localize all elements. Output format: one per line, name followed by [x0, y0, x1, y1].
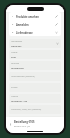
button[interactable]: Bestellung €105: [6, 117, 64, 130]
button[interactable]: Straße: [9, 83, 61, 92]
button[interactable]: Unternehmen (optional): [9, 72, 61, 81]
staticText: Anmelden: [16, 23, 29, 26]
staticText: Bestellt am 3. Juli: [14, 125, 31, 128]
staticText: Lieferadresse: [16, 31, 33, 34]
staticText: Adresse: [11, 95, 19, 98]
staticText: Anrede: [11, 51, 18, 54]
staticText: Bestellung €105: [14, 120, 35, 124]
staticText: Produkte ansehen: [16, 15, 39, 18]
staticText: 1: [12, 15, 14, 18]
button[interactable]: Wohnung, Suite, etc. (optional): [9, 105, 61, 114]
staticText: Vorname: [11, 62, 20, 65]
staticText: Germany: [11, 44, 22, 47]
other: Edit: [55, 23, 58, 26]
button[interactable]: Vorname: [9, 61, 61, 70]
button[interactable]: Adresse: [9, 94, 61, 103]
staticText: Frau: [11, 55, 17, 58]
staticText: Musterstr. 123: [11, 99, 28, 102]
staticText: 3: [12, 31, 14, 34]
button[interactable]: Land/Region: [9, 39, 61, 48]
button[interactable]: 2: [9, 20, 61, 28]
button[interactable]: 3: [9, 28, 61, 36]
button[interactable]: 1: [9, 12, 61, 20]
other: Expand: [55, 31, 58, 34]
staticText: 2: [12, 23, 14, 26]
other: Edit: [55, 15, 58, 18]
staticText: Wohnung, Suite, etc. (optional): [11, 108, 42, 111]
staticText: Straße: [11, 86, 18, 89]
staticText: Unternehmen (optional): [11, 75, 35, 78]
button[interactable]: Anrede: [9, 50, 61, 59]
staticText: Land/Region: [11, 40, 23, 43]
staticText: Musterfrau: [11, 66, 24, 69]
